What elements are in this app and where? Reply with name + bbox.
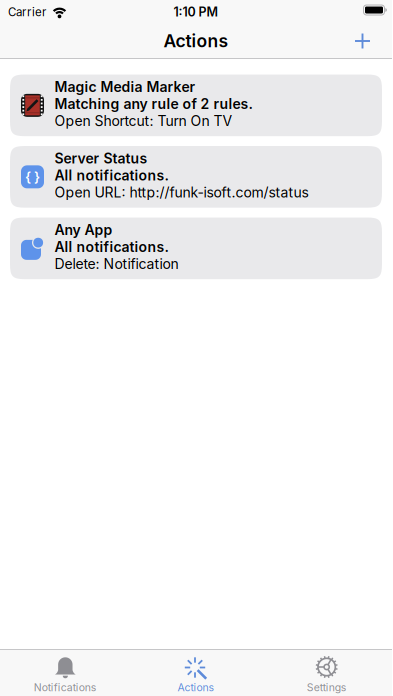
staticText: Actions xyxy=(177,681,214,694)
button[interactable]: Actions xyxy=(131,650,261,694)
staticText: Notifications xyxy=(34,681,97,694)
staticText: 1:10 PM xyxy=(173,4,218,19)
staticText: Any App xyxy=(54,221,112,238)
staticText: All notifications. xyxy=(54,238,168,255)
staticText: Matching any rule of 2 rules. xyxy=(54,95,252,112)
staticText: Open URL: http://funk-isoft.com/status xyxy=(54,184,308,201)
staticText: Carrier xyxy=(8,5,46,19)
button[interactable]: Any App xyxy=(10,217,382,279)
staticText: Settings xyxy=(307,681,347,694)
staticText: Open Shortcut: Turn On TV xyxy=(54,112,232,129)
button[interactable]: { } xyxy=(10,146,382,208)
button[interactable] xyxy=(346,24,379,57)
button[interactable]: Magic Media Marker xyxy=(10,74,382,136)
staticText: { } xyxy=(25,169,40,185)
button[interactable]: Settings xyxy=(261,650,392,694)
staticText: Server Status xyxy=(54,150,147,167)
staticText: All notifications. xyxy=(54,167,168,184)
button[interactable]: Notifications xyxy=(0,650,131,694)
staticText: Delete: Notification xyxy=(54,255,178,272)
staticText: Actions xyxy=(163,30,228,52)
staticText: Magic Media Marker xyxy=(54,78,195,95)
